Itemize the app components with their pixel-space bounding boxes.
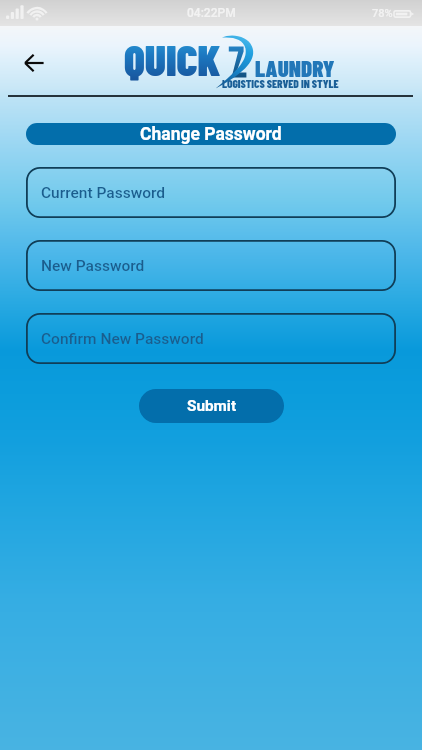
- button[interactable]: Back: [14, 43, 54, 83]
- staticText: QUICK: [124, 32, 221, 85]
- staticText: Submit: [187, 397, 237, 415]
- button[interactable]: Submit: [139, 389, 284, 423]
- staticText: Current Password: [41, 184, 166, 202]
- staticText: LAUNDRY: [255, 54, 335, 82]
- staticText: 78%: [372, 7, 393, 20]
- staticText: 04:22PM: [187, 6, 236, 20]
- staticText: Change Password: [140, 124, 282, 145]
- button[interactable]: Confirm New Password: [26, 313, 396, 364]
- staticText: Confirm New Password: [41, 330, 204, 348]
- button[interactable]: Change Password: [26, 123, 396, 145]
- staticText: New Password: [41, 257, 145, 275]
- staticText: LOGISTICS SERVED IN STYLE: [222, 76, 339, 90]
- button[interactable]: Current Password: [26, 167, 396, 218]
- button[interactable]: New Password: [26, 240, 396, 291]
